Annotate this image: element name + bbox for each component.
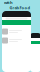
staticText: Take Grab & Save with xyxy=(4,0,36,5)
staticText: GrabFood Discounts xyxy=(9,5,30,16)
